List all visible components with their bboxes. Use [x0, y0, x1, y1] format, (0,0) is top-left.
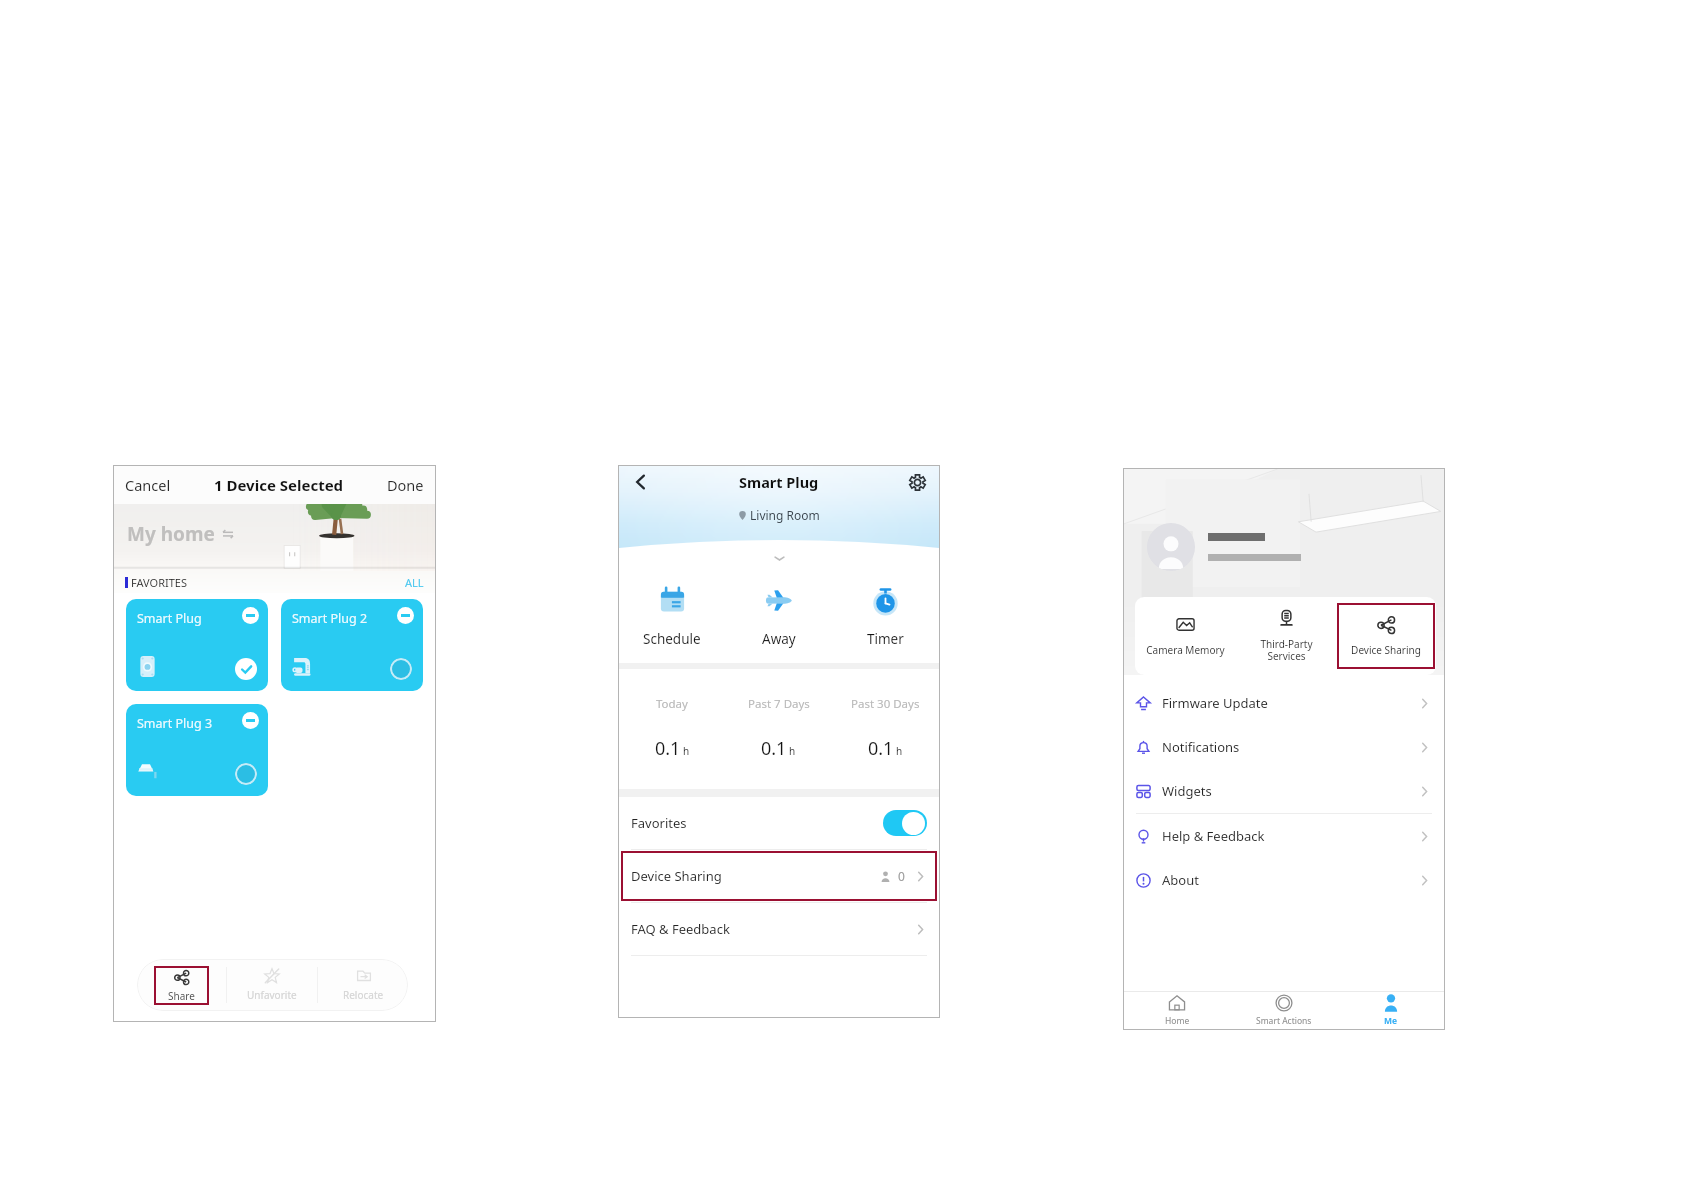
button[interactable]: Schedule: [619, 586, 725, 648]
button[interactable]: Widgets: [1124, 769, 1444, 813]
staticText: h: [683, 744, 690, 758]
staticText: 0.1: [761, 736, 787, 761]
button[interactable]: Select: [235, 763, 257, 785]
button[interactable]: Notifications: [1124, 725, 1444, 769]
staticText: Third-Party Services: [1260, 637, 1313, 663]
staticText: Relocate: [343, 988, 384, 1002]
staticText: My home: [127, 521, 215, 547]
button[interactable]: FAQ & Feedback: [619, 903, 939, 955]
staticText: Past 7 Days: [748, 696, 810, 712]
staticText: FAVORITES: [131, 575, 188, 590]
staticText: h: [896, 744, 903, 758]
button[interactable]: Device Sharing: [1336, 597, 1436, 675]
staticText: Device Sharing: [631, 867, 722, 885]
button[interactable]: Favorites: [619, 797, 939, 849]
button[interactable]: Share: [154, 966, 209, 1005]
button[interactable]: Cancel: [114, 470, 182, 500]
staticText: ALL: [405, 575, 424, 590]
button[interactable]: Remove: [397, 607, 414, 624]
staticText: Smart Plug 3: [137, 715, 213, 732]
button[interactable]: Settings: [905, 470, 929, 494]
staticText: Device Sharing: [1351, 643, 1421, 657]
staticText: Share: [168, 989, 195, 1003]
staticText: Smart Plug: [739, 472, 819, 492]
button[interactable]: Relocate: [318, 959, 408, 1011]
button[interactable]: Smart Plug 3: [126, 704, 268, 796]
staticText: Widgets: [1162, 782, 1212, 800]
button[interactable]: Timer: [832, 586, 939, 648]
button[interactable]: Select: [390, 658, 412, 680]
button[interactable]: ALL: [405, 575, 424, 590]
button[interactable]: About: [1124, 858, 1444, 902]
button[interactable]: Home: [1124, 992, 1230, 1029]
button[interactable]: Selected: [235, 658, 257, 680]
staticText: Firmware Update: [1162, 694, 1268, 712]
staticText: Unfavorite: [247, 988, 297, 1002]
staticText: Living Room: [750, 507, 820, 523]
staticText: Help & Feedback: [1162, 827, 1265, 845]
button[interactable]: Firmware Update: [1124, 681, 1444, 725]
staticText: 1 Device Selected: [214, 475, 344, 495]
staticText: About: [1162, 871, 1199, 889]
button[interactable]: Smart Plug: [126, 599, 268, 691]
staticText: Home: [1165, 1015, 1190, 1027]
staticText: 0.1: [868, 736, 894, 761]
staticText: 0: [898, 868, 905, 884]
button[interactable]: Smart Actions: [1230, 992, 1337, 1029]
button[interactable]: Device Sharing: [619, 850, 939, 902]
staticText: Notifications: [1162, 738, 1240, 756]
staticText: Camera Memory: [1146, 643, 1225, 657]
button[interactable]: Back: [629, 470, 653, 494]
staticText: Today: [656, 696, 688, 712]
staticText: Me: [1384, 1015, 1398, 1027]
staticText: Cancel: [125, 475, 171, 495]
button[interactable]: Me: [1337, 992, 1444, 1029]
button[interactable]: Unfavorite: [227, 959, 317, 1011]
button[interactable]: Remove: [242, 607, 259, 624]
staticText: Schedule: [643, 630, 701, 648]
button[interactable]: Camera Memory: [1135, 597, 1236, 675]
button[interactable]: Favorites toggle, on: [883, 810, 927, 836]
button[interactable]: Help & Feedback: [1124, 814, 1444, 858]
staticText: Past 30 Days: [851, 696, 920, 712]
staticText: Done: [387, 475, 424, 495]
button[interactable]: Away: [725, 586, 832, 648]
staticText: h: [789, 744, 796, 758]
button[interactable]: Smart Plug 2: [281, 599, 423, 691]
staticText: FAQ & Feedback: [631, 920, 730, 938]
staticText: Favorites: [631, 814, 687, 832]
staticText: Smart Actions: [1256, 1015, 1312, 1027]
staticText: 0.1: [655, 736, 681, 761]
staticText: Smart Plug: [137, 610, 202, 627]
staticText: Smart Plug 2: [292, 610, 368, 627]
button[interactable]: Done: [376, 470, 435, 500]
button[interactable]: Third-Party Services: [1236, 597, 1336, 675]
staticText: Away: [762, 630, 796, 648]
button[interactable]: Remove: [242, 712, 259, 729]
staticText: Timer: [867, 630, 904, 648]
